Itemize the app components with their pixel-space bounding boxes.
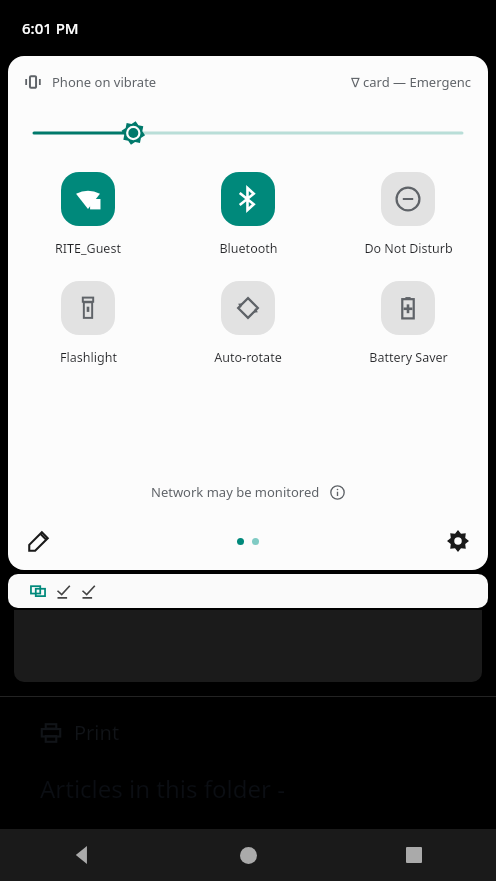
staticText: 6:01 PM <box>22 18 79 38</box>
button[interactable]: Settings <box>436 519 480 563</box>
staticText: Battery Saver <box>369 349 448 366</box>
button[interactable]: Flashlight <box>8 281 168 366</box>
button[interactable]: Back <box>0 829 166 881</box>
staticText: Flashlight <box>60 349 117 366</box>
button[interactable]: Brightness <box>8 108 488 158</box>
button[interactable]: Recent apps <box>331 829 496 881</box>
staticText: Articles in this folder - <box>40 772 285 805</box>
button[interactable]: Do Not Disturb <box>328 172 488 257</box>
staticText: Do Not Disturb <box>364 240 453 257</box>
staticText: Print <box>74 719 120 746</box>
staticText: ∇ card — Emergenc <box>351 73 472 91</box>
button[interactable]: Home <box>166 829 331 881</box>
staticText: Bluetooth <box>219 240 278 257</box>
button[interactable]: Auto-rotate <box>168 281 328 366</box>
staticText: Network may be monitored <box>151 483 320 501</box>
button[interactable] <box>8 574 488 608</box>
button[interactable]: RITE_Guest <box>8 172 168 257</box>
button[interactable]: Network may be monitored <box>8 472 488 512</box>
button[interactable]: Battery Saver <box>328 281 488 366</box>
button[interactable]: Bluetooth <box>168 172 328 257</box>
button[interactable]: Edit tiles <box>16 519 60 563</box>
staticText: Phone on vibrate <box>52 73 157 91</box>
staticText: RITE_Guest <box>55 240 121 257</box>
staticText: Auto-rotate <box>214 349 282 366</box>
